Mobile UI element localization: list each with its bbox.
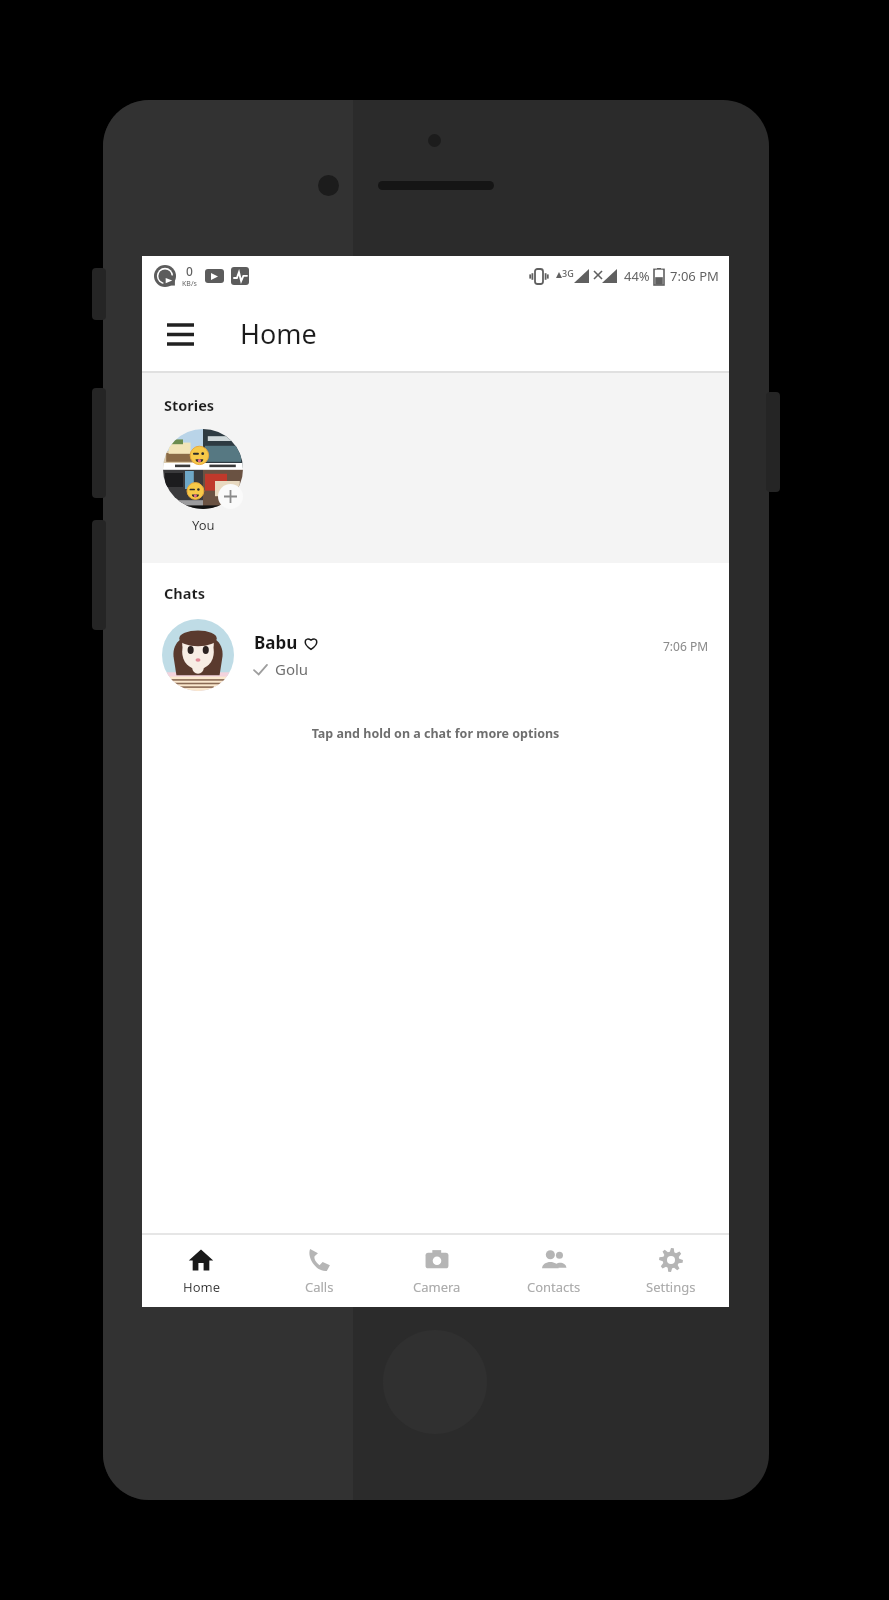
staticText: Settings bbox=[646, 1278, 696, 1296]
staticText: Camera bbox=[413, 1278, 461, 1296]
staticText: Babu bbox=[254, 631, 298, 654]
button[interactable]: Camera bbox=[378, 1235, 495, 1307]
button[interactable]: Contacts bbox=[495, 1235, 612, 1307]
button[interactable]: Settings bbox=[612, 1235, 729, 1307]
staticText: Golu bbox=[275, 659, 309, 679]
staticText: Chats bbox=[164, 583, 205, 603]
button[interactable]: Calls bbox=[260, 1235, 378, 1307]
staticText: Stories bbox=[164, 395, 215, 415]
staticText: 44% bbox=[624, 267, 650, 285]
staticText: Calls bbox=[305, 1278, 334, 1296]
button[interactable]: Home bbox=[142, 1235, 260, 1307]
staticText: 7:06 PM bbox=[670, 267, 719, 285]
staticText: You bbox=[192, 516, 215, 534]
staticText: Contacts bbox=[527, 1278, 581, 1296]
staticText: 0 bbox=[186, 263, 193, 279]
staticText: Tap and hold on a chat for more options bbox=[142, 725, 729, 742]
button[interactable]: Babu bbox=[142, 617, 729, 693]
button[interactable]: Open navigation menu bbox=[156, 310, 204, 358]
staticText: 3G bbox=[562, 267, 574, 279]
button[interactable]: You bbox=[161, 429, 245, 534]
staticText: KB/s bbox=[182, 279, 197, 289]
staticText: Home bbox=[240, 315, 317, 352]
staticText: Home bbox=[183, 1278, 220, 1296]
staticText: 7:06 PM bbox=[663, 638, 709, 654]
